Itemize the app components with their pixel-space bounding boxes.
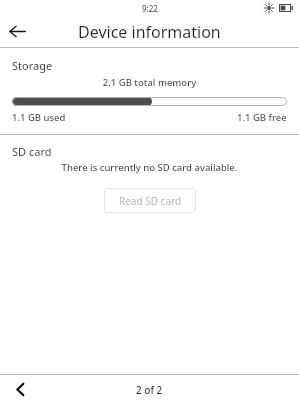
staticText: 2 of 2: [136, 383, 163, 397]
staticText: SD card: [12, 144, 52, 159]
staticText: Storage: [12, 58, 53, 73]
button[interactable]: Back: [0, 16, 34, 47]
staticText: 1.1 GB used: [12, 111, 66, 124]
staticText: 2.1 GB total memory: [0, 76, 299, 89]
button[interactable]: Previous: [0, 375, 40, 404]
staticText: 1.1 GB free: [237, 111, 287, 124]
staticText: Device information: [78, 21, 221, 43]
staticText: There is currently no SD card available.: [0, 161, 299, 174]
button[interactable]: Read SD card: [104, 188, 196, 213]
staticText: Read SD card: [119, 194, 182, 208]
staticText: 9:22: [142, 3, 158, 14]
